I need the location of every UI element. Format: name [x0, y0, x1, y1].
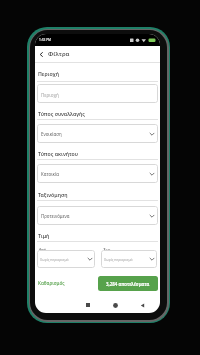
button[interactable] [37, 206, 158, 225]
staticText: 1:53 PM [39, 38, 52, 42]
staticText: Χωρίς περιορισμό [40, 257, 69, 262]
staticText: Τύπος ακινήτου [38, 150, 79, 157]
staticText: Καθαρισμός [38, 280, 65, 286]
staticText: Προτεινόμενα [41, 213, 70, 219]
button[interactable] [37, 124, 158, 143]
staticText: Χωρίς περιορισμό [104, 257, 133, 262]
staticText: Τιμή [38, 232, 50, 239]
button[interactable] [37, 250, 95, 268]
button[interactable] [82, 299, 94, 311]
button[interactable] [37, 164, 158, 183]
staticText: Περιοχή [41, 92, 59, 98]
button[interactable]: Καθαρισμός [37, 277, 71, 289]
button[interactable]: 3,284 αποτελέσματα [98, 276, 158, 291]
staticText: Κατοικία [41, 171, 60, 177]
staticText: Από [39, 247, 46, 252]
button[interactable] [39, 52, 44, 57]
staticText: 3,284 αποτελέσματα [106, 281, 150, 287]
staticText: Τύπος συναλλαγής [38, 110, 85, 117]
button[interactable] [109, 299, 121, 311]
button[interactable] [37, 84, 158, 103]
button[interactable] [136, 299, 148, 311]
staticText: Ταξινόμηση [38, 191, 68, 198]
staticText: Φίλτρα [48, 50, 70, 58]
staticText: Περιοχή [38, 70, 59, 77]
button[interactable] [101, 250, 157, 268]
staticText: Ενοικίαση [41, 131, 62, 137]
staticText: Έως [103, 247, 111, 252]
